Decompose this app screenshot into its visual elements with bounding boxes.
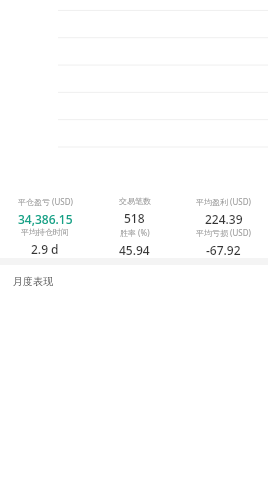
staticText: -67.92 [206,242,241,258]
staticText: 平均盈利 (USD) [196,196,251,207]
staticText: 224.39 [205,211,243,227]
staticText: 2.9 d [31,241,59,257]
staticText: 平均持仓时间 [21,227,69,237]
staticText: 518 [124,210,145,226]
staticText: 45.94 [119,242,150,258]
staticText: 平仓盈亏 (USD) [18,196,73,207]
staticText: 34,386.15 [18,211,73,227]
staticText: 平均亏损 (USD) [196,227,251,238]
staticText: 月度表现 [13,275,53,288]
staticText: 交易笔数 [119,196,151,206]
staticText: 胜率 (%) [120,227,150,238]
